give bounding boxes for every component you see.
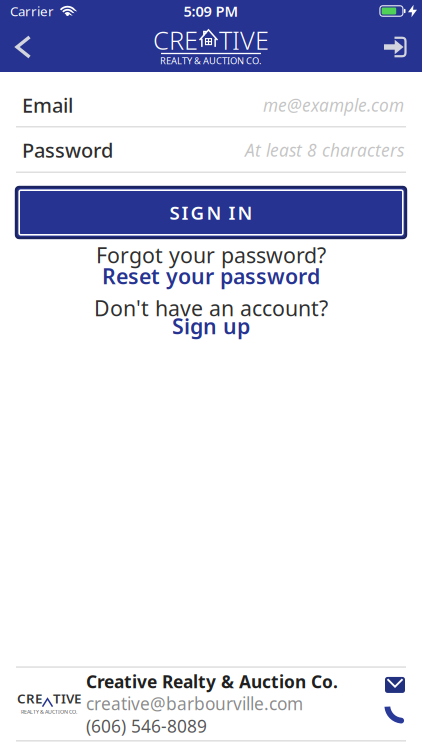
staticText: Password — [22, 137, 113, 163]
staticText: Creative Realty & Auction Co. — [86, 670, 338, 693]
staticText: Email — [22, 92, 73, 118]
staticText: Carrier — [10, 2, 54, 20]
button[interactable] — [385, 677, 405, 693]
button[interactable]: Sign up — [172, 318, 250, 333]
button[interactable]: Email — [0, 72, 422, 127]
button[interactable]: Reset your password — [102, 265, 320, 286]
staticText: Don't have an account? — [94, 294, 328, 322]
staticText: creative@barbourville.com — [86, 692, 303, 715]
staticText: (606) 546-8089 — [86, 714, 207, 737]
staticText: Reset your password — [102, 262, 320, 290]
staticText: TIVE — [219, 23, 269, 57]
staticText: 5:09 PM — [183, 1, 238, 21]
staticText: CRE — [153, 23, 198, 57]
button[interactable]: Password — [0, 127, 422, 173]
staticText: CRE — [17, 689, 42, 707]
staticText: me@example.com — [263, 93, 404, 116]
staticText: Sign up — [172, 312, 250, 340]
staticText: REALTY & AUCTION CO. — [160, 54, 262, 67]
staticText: At least 8 characters — [245, 138, 404, 161]
button[interactable] — [372, 24, 422, 70]
staticText: TIVE — [53, 689, 81, 707]
button[interactable]: S I G N I N — [0, 187, 422, 238]
staticText: Forgot your password? — [96, 241, 326, 269]
staticText: S I G N I N — [169, 200, 252, 225]
button[interactable] — [0, 23, 41, 71]
button[interactable] — [385, 703, 405, 723]
staticText: REALTY & AUCTION CO. — [21, 708, 77, 715]
